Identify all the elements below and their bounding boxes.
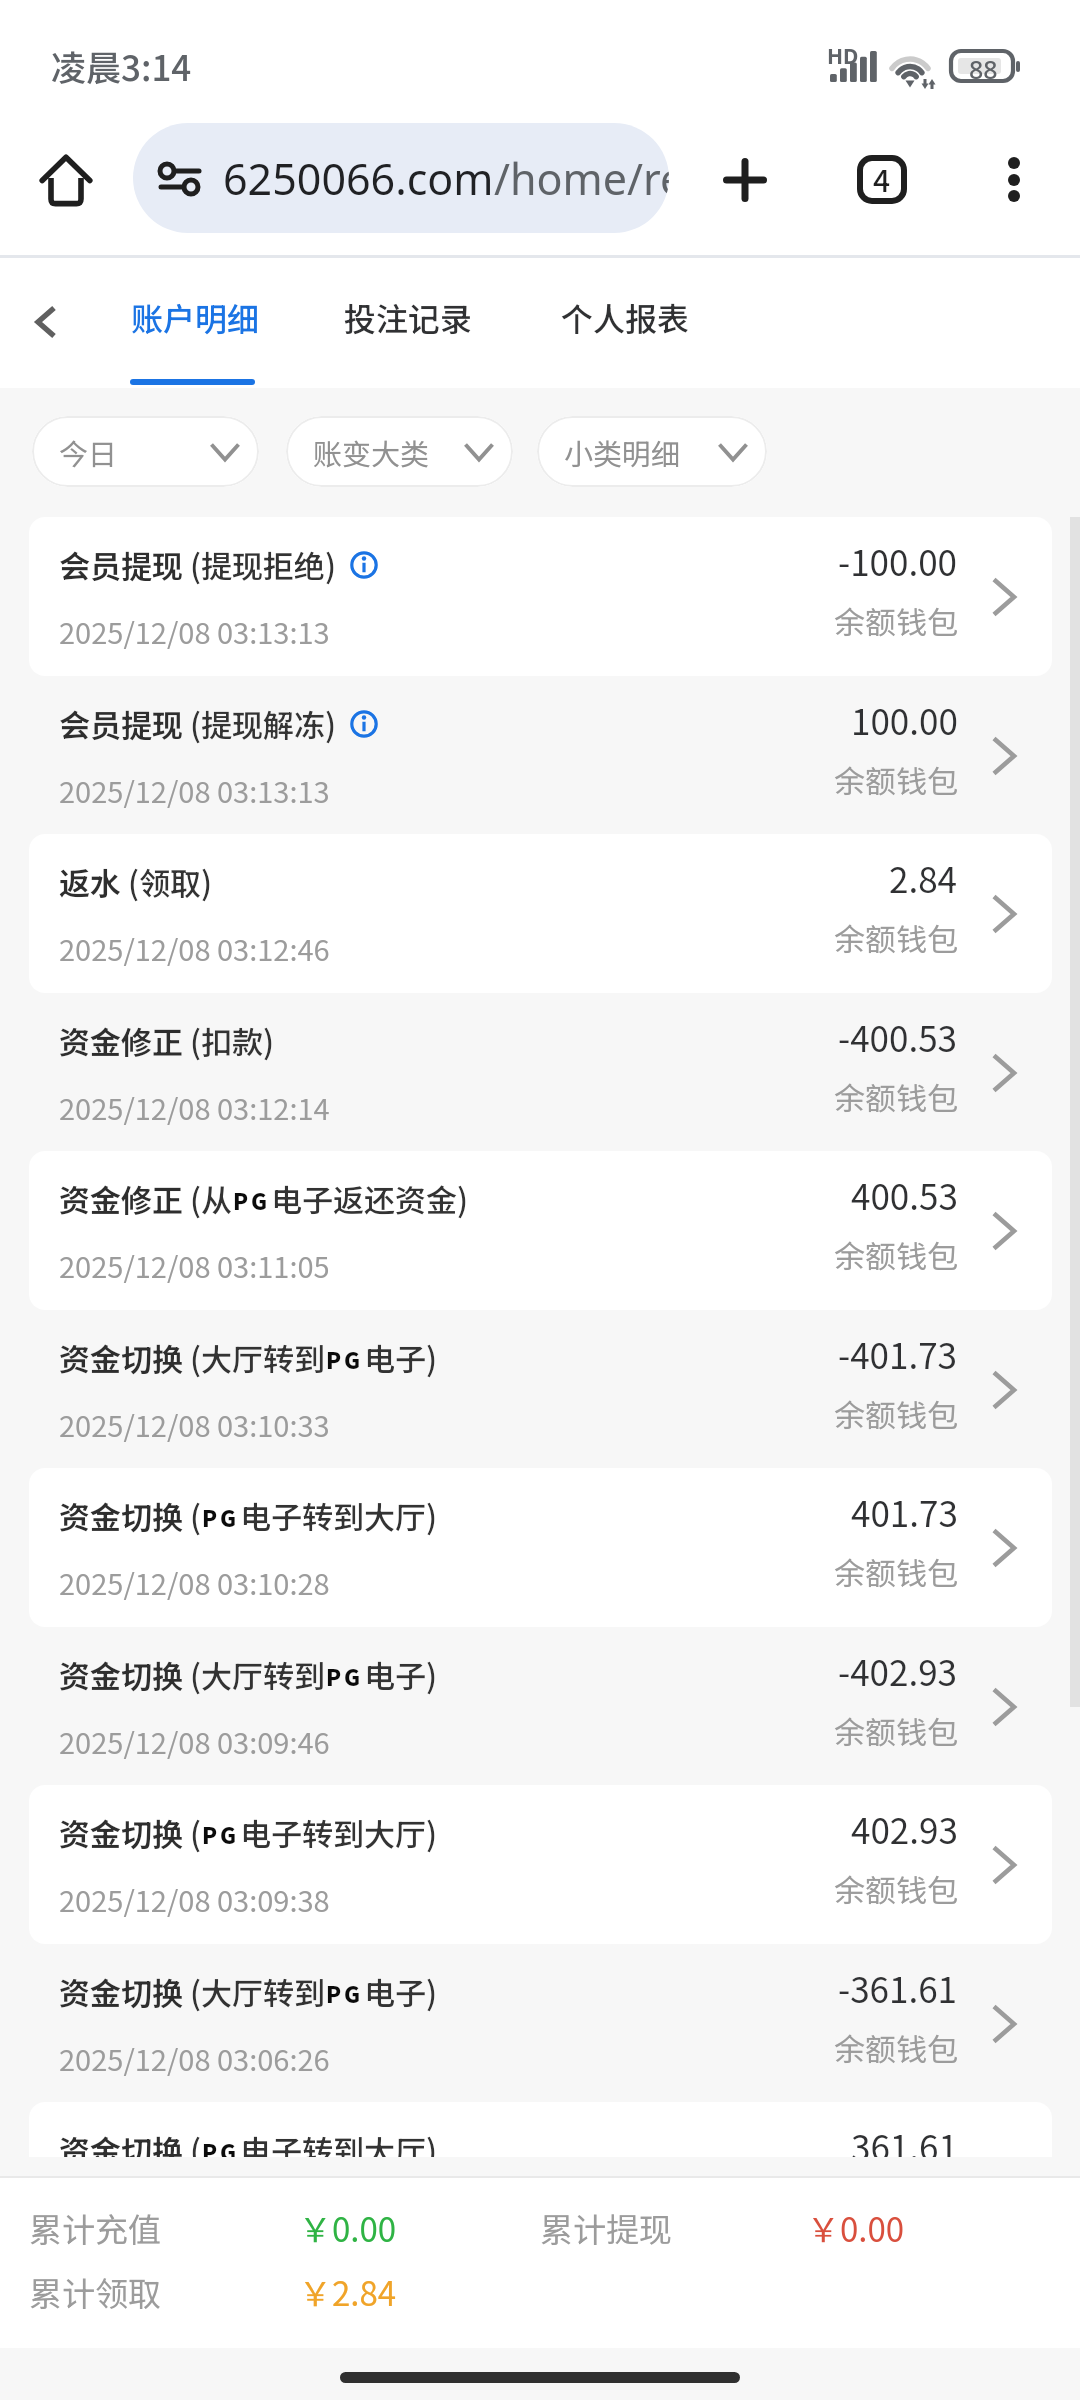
staticText: 账户明细	[131, 294, 260, 340]
button[interactable]: 账户明细	[119, 258, 267, 388]
staticText: 账变大类	[313, 431, 430, 473]
staticText: 余额钱包	[834, 757, 958, 802]
staticText: (	[183, 1493, 202, 1538]
staticText: 361.61	[851, 2120, 958, 2157]
staticText: 2025/12/08 03:12:14	[59, 1086, 330, 1128]
staticText: (提现拒绝)	[183, 542, 337, 587]
button[interactable]: 账变大类	[286, 416, 513, 487]
staticText: 余额钱包	[834, 2025, 958, 2070]
button[interactable]: 资金切换	[29, 1785, 1052, 1944]
staticText: 2025/12/08 03:09:46	[59, 1720, 330, 1762]
staticText: 凌晨3:14	[51, 40, 192, 91]
staticText: PG	[202, 2135, 240, 2157]
staticText: 2025/12/08 03:11:05	[59, 1244, 330, 1286]
staticText: 资金切换	[59, 1652, 183, 1697]
staticText: (领取)	[121, 859, 213, 904]
button[interactable]: 个人报表	[549, 258, 697, 388]
staticText: 400.53	[851, 1169, 958, 1220]
staticText: 电子)	[364, 1652, 438, 1697]
button[interactable]: 小类明细	[537, 416, 767, 487]
staticText: 余额钱包	[834, 598, 958, 643]
staticText: 6250066.com	[223, 149, 494, 208]
staticText: -361.61	[838, 1962, 958, 2013]
button[interactable]: More options	[966, 132, 1062, 228]
staticText: HD	[827, 42, 859, 71]
button[interactable]: 资金切换	[29, 1310, 1052, 1469]
staticText: 小类明细	[564, 431, 681, 473]
button[interactable]: 会员提现	[29, 676, 1052, 835]
staticText: 余额钱包	[834, 915, 958, 960]
button[interactable]: 资金修正	[29, 1151, 1052, 1310]
button[interactable]: 6250066.com	[133, 123, 669, 233]
staticText: -402.93	[838, 1645, 958, 1696]
staticText: 今日	[59, 431, 118, 473]
button[interactable]: New tab	[697, 132, 793, 228]
staticText: -400.53	[838, 1011, 958, 1062]
staticText: 会员提现	[59, 701, 183, 746]
staticText: PG	[326, 1343, 364, 1375]
button[interactable]: 投注记录	[332, 258, 480, 388]
staticText: ￥2.84	[299, 2268, 397, 2316]
staticText: (	[183, 2127, 202, 2157]
staticText: 资金切换	[59, 1969, 183, 2014]
staticText: (扣款)	[183, 1018, 275, 1063]
staticText: 余额钱包	[834, 1391, 958, 1436]
staticText: -100.00	[838, 535, 958, 586]
staticText: 88	[969, 52, 998, 86]
staticText: PG	[202, 1501, 240, 1533]
button[interactable]: 返水	[29, 834, 1052, 993]
staticText: 资金修正	[59, 1018, 183, 1063]
staticText: 402.93	[851, 1803, 958, 1854]
staticText: 会员提现	[59, 542, 183, 587]
staticText: (大厅转到	[183, 1969, 326, 2014]
staticText: 电子转到大厅)	[240, 2127, 438, 2157]
staticText: 100.00	[851, 694, 958, 745]
staticText: PG	[326, 1660, 364, 1692]
staticText: 2025/12/08 03:12:46	[59, 927, 330, 969]
staticText: (大厅转到	[183, 1335, 326, 1380]
button[interactable]: 今日	[32, 416, 259, 487]
button[interactable]: Home	[18, 130, 114, 226]
staticText: 电子返还资金)	[271, 1176, 469, 1221]
staticText: 资金修正	[59, 1176, 183, 1221]
staticText: 2025/12/08 03:06:26	[59, 2037, 330, 2079]
button[interactable]: 资金修正	[29, 993, 1052, 1152]
staticText: PG	[202, 1818, 240, 1850]
staticText: 2025/12/08 03:10:28	[59, 1561, 330, 1603]
staticText: 资金切换	[59, 2127, 183, 2157]
staticText: 2025/12/08 03:10:33	[59, 1403, 330, 1445]
staticText: 余额钱包	[834, 1708, 958, 1753]
button[interactable]: 资金切换	[29, 1627, 1052, 1786]
staticText: 返水	[59, 859, 121, 904]
staticText: PG	[233, 1184, 271, 1216]
staticText: (	[183, 1810, 202, 1855]
staticText: 累计领取	[29, 2268, 161, 2316]
staticText: 资金切换	[59, 1810, 183, 1855]
staticText: 资金切换	[59, 1335, 183, 1380]
staticText: -401.73	[838, 1328, 958, 1379]
staticText: 个人报表	[561, 294, 690, 340]
staticText: 余额钱包	[834, 1866, 958, 1911]
staticText: 401.73	[851, 1486, 958, 1537]
staticText: ￥0.00	[299, 2204, 397, 2252]
staticText: (大厅转到	[183, 1652, 326, 1697]
staticText: 累计充值	[29, 2204, 161, 2252]
staticText: 累计提现	[540, 2204, 672, 2252]
button[interactable]: 资金切换	[29, 1468, 1052, 1627]
staticText: 余额钱包	[834, 1549, 958, 1594]
staticText: (从	[183, 1176, 233, 1221]
staticText: 2025/12/08 03:09:38	[59, 1878, 330, 1920]
button[interactable]: Back	[0, 270, 92, 376]
staticText: ￥0.00	[807, 2204, 905, 2252]
button[interactable]: 资金切换	[29, 2102, 1052, 2157]
button[interactable]: 会员提现	[29, 517, 1052, 676]
staticText: 2.84	[889, 852, 958, 903]
button[interactable]: 资金切换	[29, 1944, 1052, 2103]
staticText: 4	[873, 157, 891, 200]
staticText: 电子)	[364, 1969, 438, 2014]
staticText: 余额钱包	[834, 1232, 958, 1277]
button[interactable]: Tabs	[835, 131, 931, 227]
staticText: 资金切换	[59, 1493, 183, 1538]
staticText: PG	[326, 1977, 364, 2009]
staticText: 电子)	[364, 1335, 438, 1380]
